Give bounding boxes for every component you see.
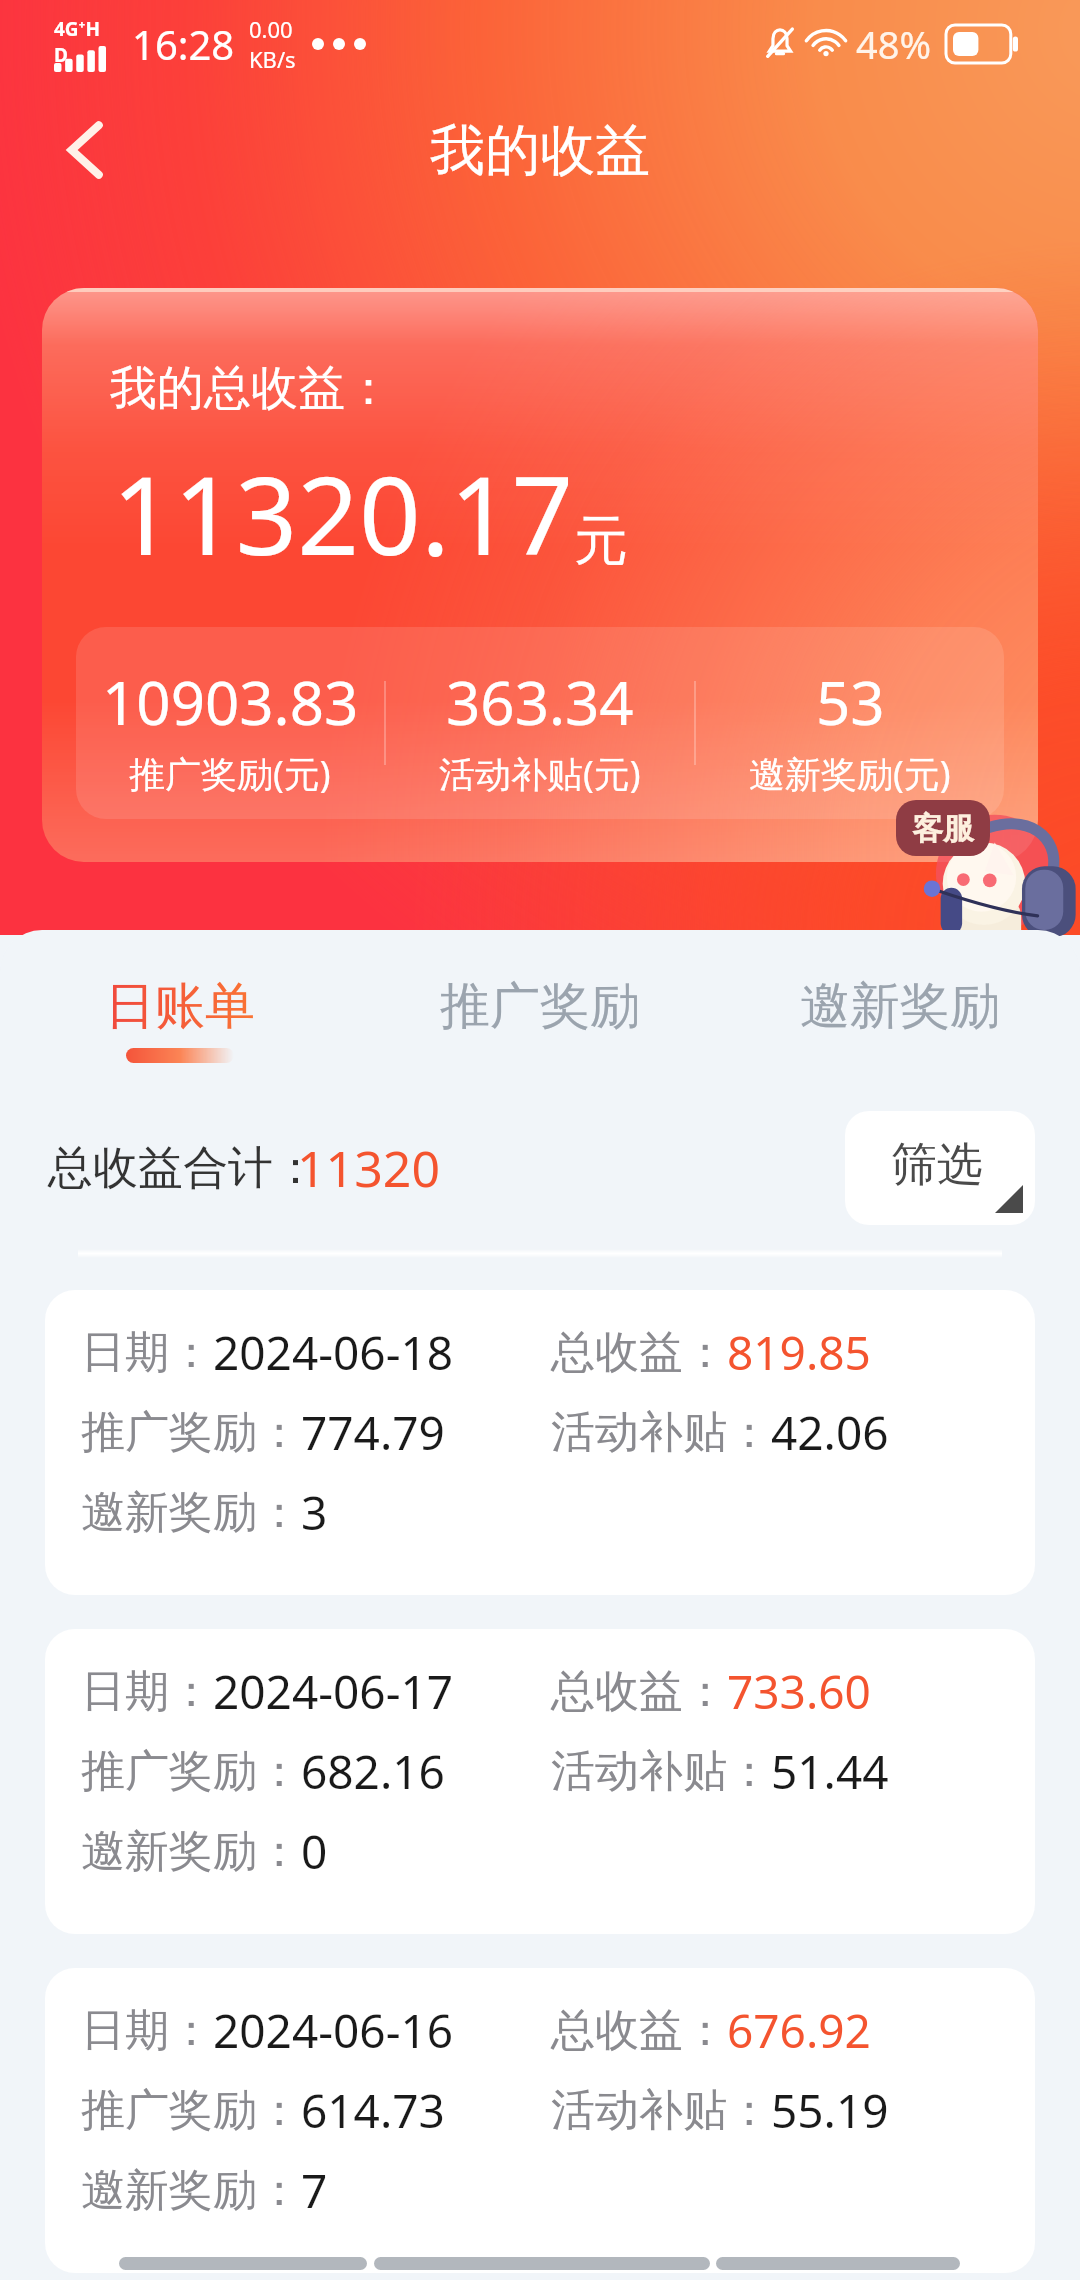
staticText: 2024-06-18 bbox=[213, 1321, 454, 1384]
staticText: 日账单 bbox=[105, 975, 255, 1038]
staticText: 48% bbox=[856, 18, 932, 70]
button[interactable]: 日期： bbox=[45, 1629, 1035, 1934]
staticText: 总收益： bbox=[551, 2003, 727, 2058]
button[interactable]: 日期： bbox=[45, 1290, 1035, 1595]
staticText: 我的总收益： bbox=[110, 359, 392, 418]
staticText: 363.34 bbox=[446, 661, 634, 743]
staticText: 推广奖励： bbox=[81, 1744, 301, 1799]
staticText: 邀新奖励(元) bbox=[749, 749, 951, 798]
staticText: 推广奖励 bbox=[440, 975, 640, 1038]
staticText: KB/s bbox=[249, 44, 296, 74]
staticText: 53 bbox=[816, 661, 885, 743]
staticText: 4G⁺HD bbox=[54, 16, 110, 68]
staticText: 邀新奖励： bbox=[81, 1824, 301, 1879]
staticText: 活动补贴： bbox=[551, 2083, 771, 2138]
staticText: 总收益： bbox=[551, 1325, 727, 1380]
staticText: 邀新奖励： bbox=[81, 2163, 301, 2218]
staticText: 16:28 bbox=[132, 17, 235, 71]
staticText: 2024-06-16 bbox=[213, 1999, 454, 2062]
button[interactable]: Recents bbox=[119, 2257, 367, 2270]
button[interactable]: 筛选 bbox=[845, 1111, 1035, 1225]
staticText: 日期： bbox=[81, 1325, 213, 1380]
staticText: 11320 bbox=[297, 1134, 440, 1202]
staticText: 推广奖励(元) bbox=[129, 749, 331, 798]
staticText: 元 bbox=[574, 507, 628, 575]
staticText: 推广奖励： bbox=[81, 2083, 301, 2138]
button[interactable]: Back bbox=[716, 2257, 960, 2270]
staticText: 733.60 bbox=[727, 1660, 871, 1723]
staticText: 活动补贴： bbox=[551, 1744, 771, 1799]
staticText: 55.19 bbox=[771, 2079, 889, 2142]
staticText: 我的收益 bbox=[430, 116, 650, 185]
staticText: 7 bbox=[301, 2159, 328, 2222]
button[interactable]: 客服 Customer service bbox=[888, 786, 1080, 934]
staticText: 11320.17 bbox=[112, 440, 574, 587]
staticText: 774.79 bbox=[301, 1401, 445, 1464]
button[interactable]: Back bbox=[46, 110, 126, 190]
button[interactable]: Home bbox=[374, 2257, 710, 2270]
staticText: 邀新奖励 bbox=[800, 975, 1000, 1038]
staticText: 0.00 bbox=[249, 14, 293, 44]
staticText: 总收益： bbox=[551, 1664, 727, 1719]
staticText: 614.73 bbox=[301, 2079, 445, 2142]
staticText: 日期： bbox=[81, 1664, 213, 1719]
button[interactable]: 邀新奖励 bbox=[720, 975, 1080, 1048]
staticText: 活动补贴： bbox=[551, 1405, 771, 1460]
staticText: 42.06 bbox=[771, 1401, 889, 1464]
staticText: 3 bbox=[301, 1481, 328, 1544]
staticText: 筛选 bbox=[891, 1136, 983, 1194]
staticText: 682.16 bbox=[301, 1740, 445, 1803]
staticText: 日期： bbox=[81, 2003, 213, 2058]
staticText: 676.92 bbox=[727, 1999, 871, 2062]
staticText: 推广奖励： bbox=[81, 1405, 301, 1460]
staticText: 819.85 bbox=[727, 1321, 871, 1384]
staticText: 10903.83 bbox=[102, 661, 359, 743]
staticText: 0 bbox=[301, 1820, 328, 1883]
staticText: 活动补贴(元) bbox=[439, 749, 641, 798]
button[interactable]: 推广奖励 bbox=[360, 975, 720, 1048]
staticText: 邀新奖励： bbox=[81, 1485, 301, 1540]
button[interactable]: 日期： bbox=[45, 1968, 1035, 2273]
button[interactable]: 日账单 bbox=[0, 975, 360, 1063]
staticText: 客服 bbox=[912, 809, 974, 848]
staticText: 51.44 bbox=[771, 1740, 889, 1803]
staticText: 总收益合计： bbox=[48, 1140, 318, 1197]
staticText: 2024-06-17 bbox=[213, 1660, 454, 1723]
